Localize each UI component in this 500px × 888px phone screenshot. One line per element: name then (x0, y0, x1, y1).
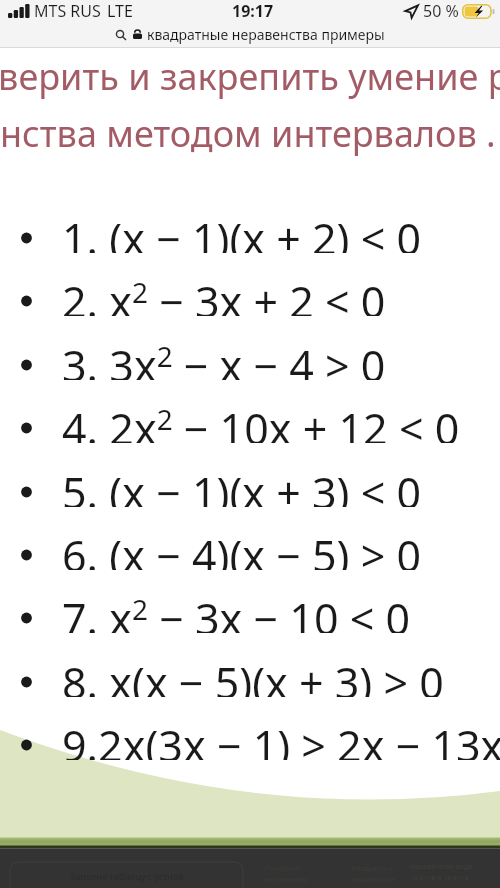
staticText: 4. 2x2 − 10x + 12 < 0 (62, 399, 460, 443)
staticText: проверить и закрепить умение ре (0, 52, 500, 101)
staticText: 50 % (423, 0, 459, 22)
staticText: 9.2x(3x − 1) > 2x − 13x (62, 716, 500, 760)
staticText: 6. (x − 4)(x − 5) > 0 (62, 526, 422, 570)
staticText: 8. x(x − 5)(x + 3) > 0 (62, 653, 444, 697)
staticText: MTS RUS (34, 0, 101, 22)
staticText: 7. x2 − 3x − 10 < 0 (62, 589, 411, 633)
staticText: 19:17 (232, 0, 274, 22)
staticText: 5. (x − 1)(x + 3) < 0 (62, 463, 422, 507)
staticText: 2. x2 − 3x + 2 < 0 (62, 272, 386, 316)
staticText: 3. 3x2 − x − 4 > 0 (62, 336, 386, 380)
staticText: нства методом интервалов . (0, 109, 496, 158)
staticText: 1. (x − 1)(x + 2) < 0 (62, 209, 422, 253)
staticText: LTE (107, 0, 133, 22)
staticText: квадратные неравенства примеры (147, 25, 385, 44)
button[interactable]: квадратные неравенства примеры (0, 22, 500, 47)
